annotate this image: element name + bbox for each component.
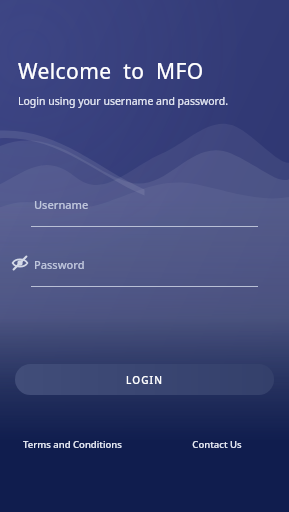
staticText: Contact Us [192,438,242,451]
button[interactable]: Show password [10,253,29,272]
staticText: Login using your username and password. [18,94,229,108]
button[interactable]: LOGIN [15,364,274,395]
staticText: Welcome to MFO [18,57,204,86]
button[interactable]: Username [0,192,289,228]
staticText: Username [34,197,89,212]
staticText: Password [34,257,85,272]
button[interactable]: Contact Us [144,438,289,451]
staticText: Terms and Conditions [23,438,122,451]
button[interactable]: Terms and Conditions [0,438,144,451]
staticText: LOGIN [126,373,164,387]
